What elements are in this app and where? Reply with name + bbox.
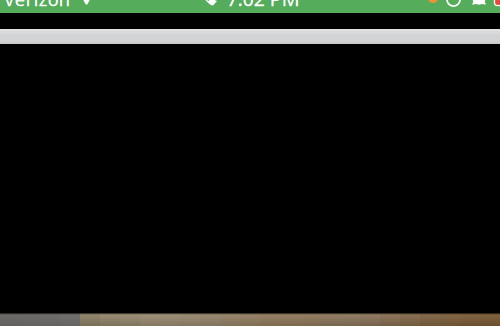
staticText: 7:02 PM	[226, 0, 299, 12]
staticText: Verizon	[3, 0, 70, 11]
